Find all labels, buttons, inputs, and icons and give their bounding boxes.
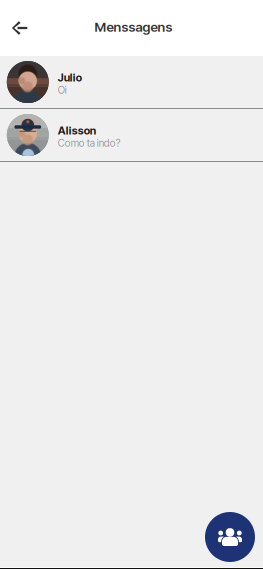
button[interactable]: New group conversation bbox=[205, 512, 255, 562]
button[interactable]: Julio bbox=[0, 56, 263, 109]
staticText: Alisson bbox=[58, 124, 96, 137]
button[interactable]: Back bbox=[0, 10, 39, 46]
staticText: Oi bbox=[58, 84, 67, 96]
staticText: Como ta indo? bbox=[58, 137, 121, 149]
button[interactable]: Alisson bbox=[0, 109, 263, 162]
staticText: Julio bbox=[58, 71, 82, 84]
staticText: Menssagens bbox=[94, 19, 172, 35]
